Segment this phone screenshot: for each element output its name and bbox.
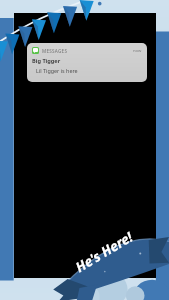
staticText: Big Tigger bbox=[32, 57, 61, 65]
other: Messages app icon bbox=[32, 47, 39, 54]
staticText: Lil Tigger is here bbox=[36, 67, 78, 74]
button[interactable]: He's Here celebration banner bbox=[0, 0, 169, 300]
staticText: MESSAGES bbox=[42, 48, 68, 54]
staticText: now bbox=[133, 48, 142, 54]
button[interactable]: Messages app icon bbox=[27, 43, 147, 82]
staticText: He's Here! bbox=[72, 228, 136, 276]
